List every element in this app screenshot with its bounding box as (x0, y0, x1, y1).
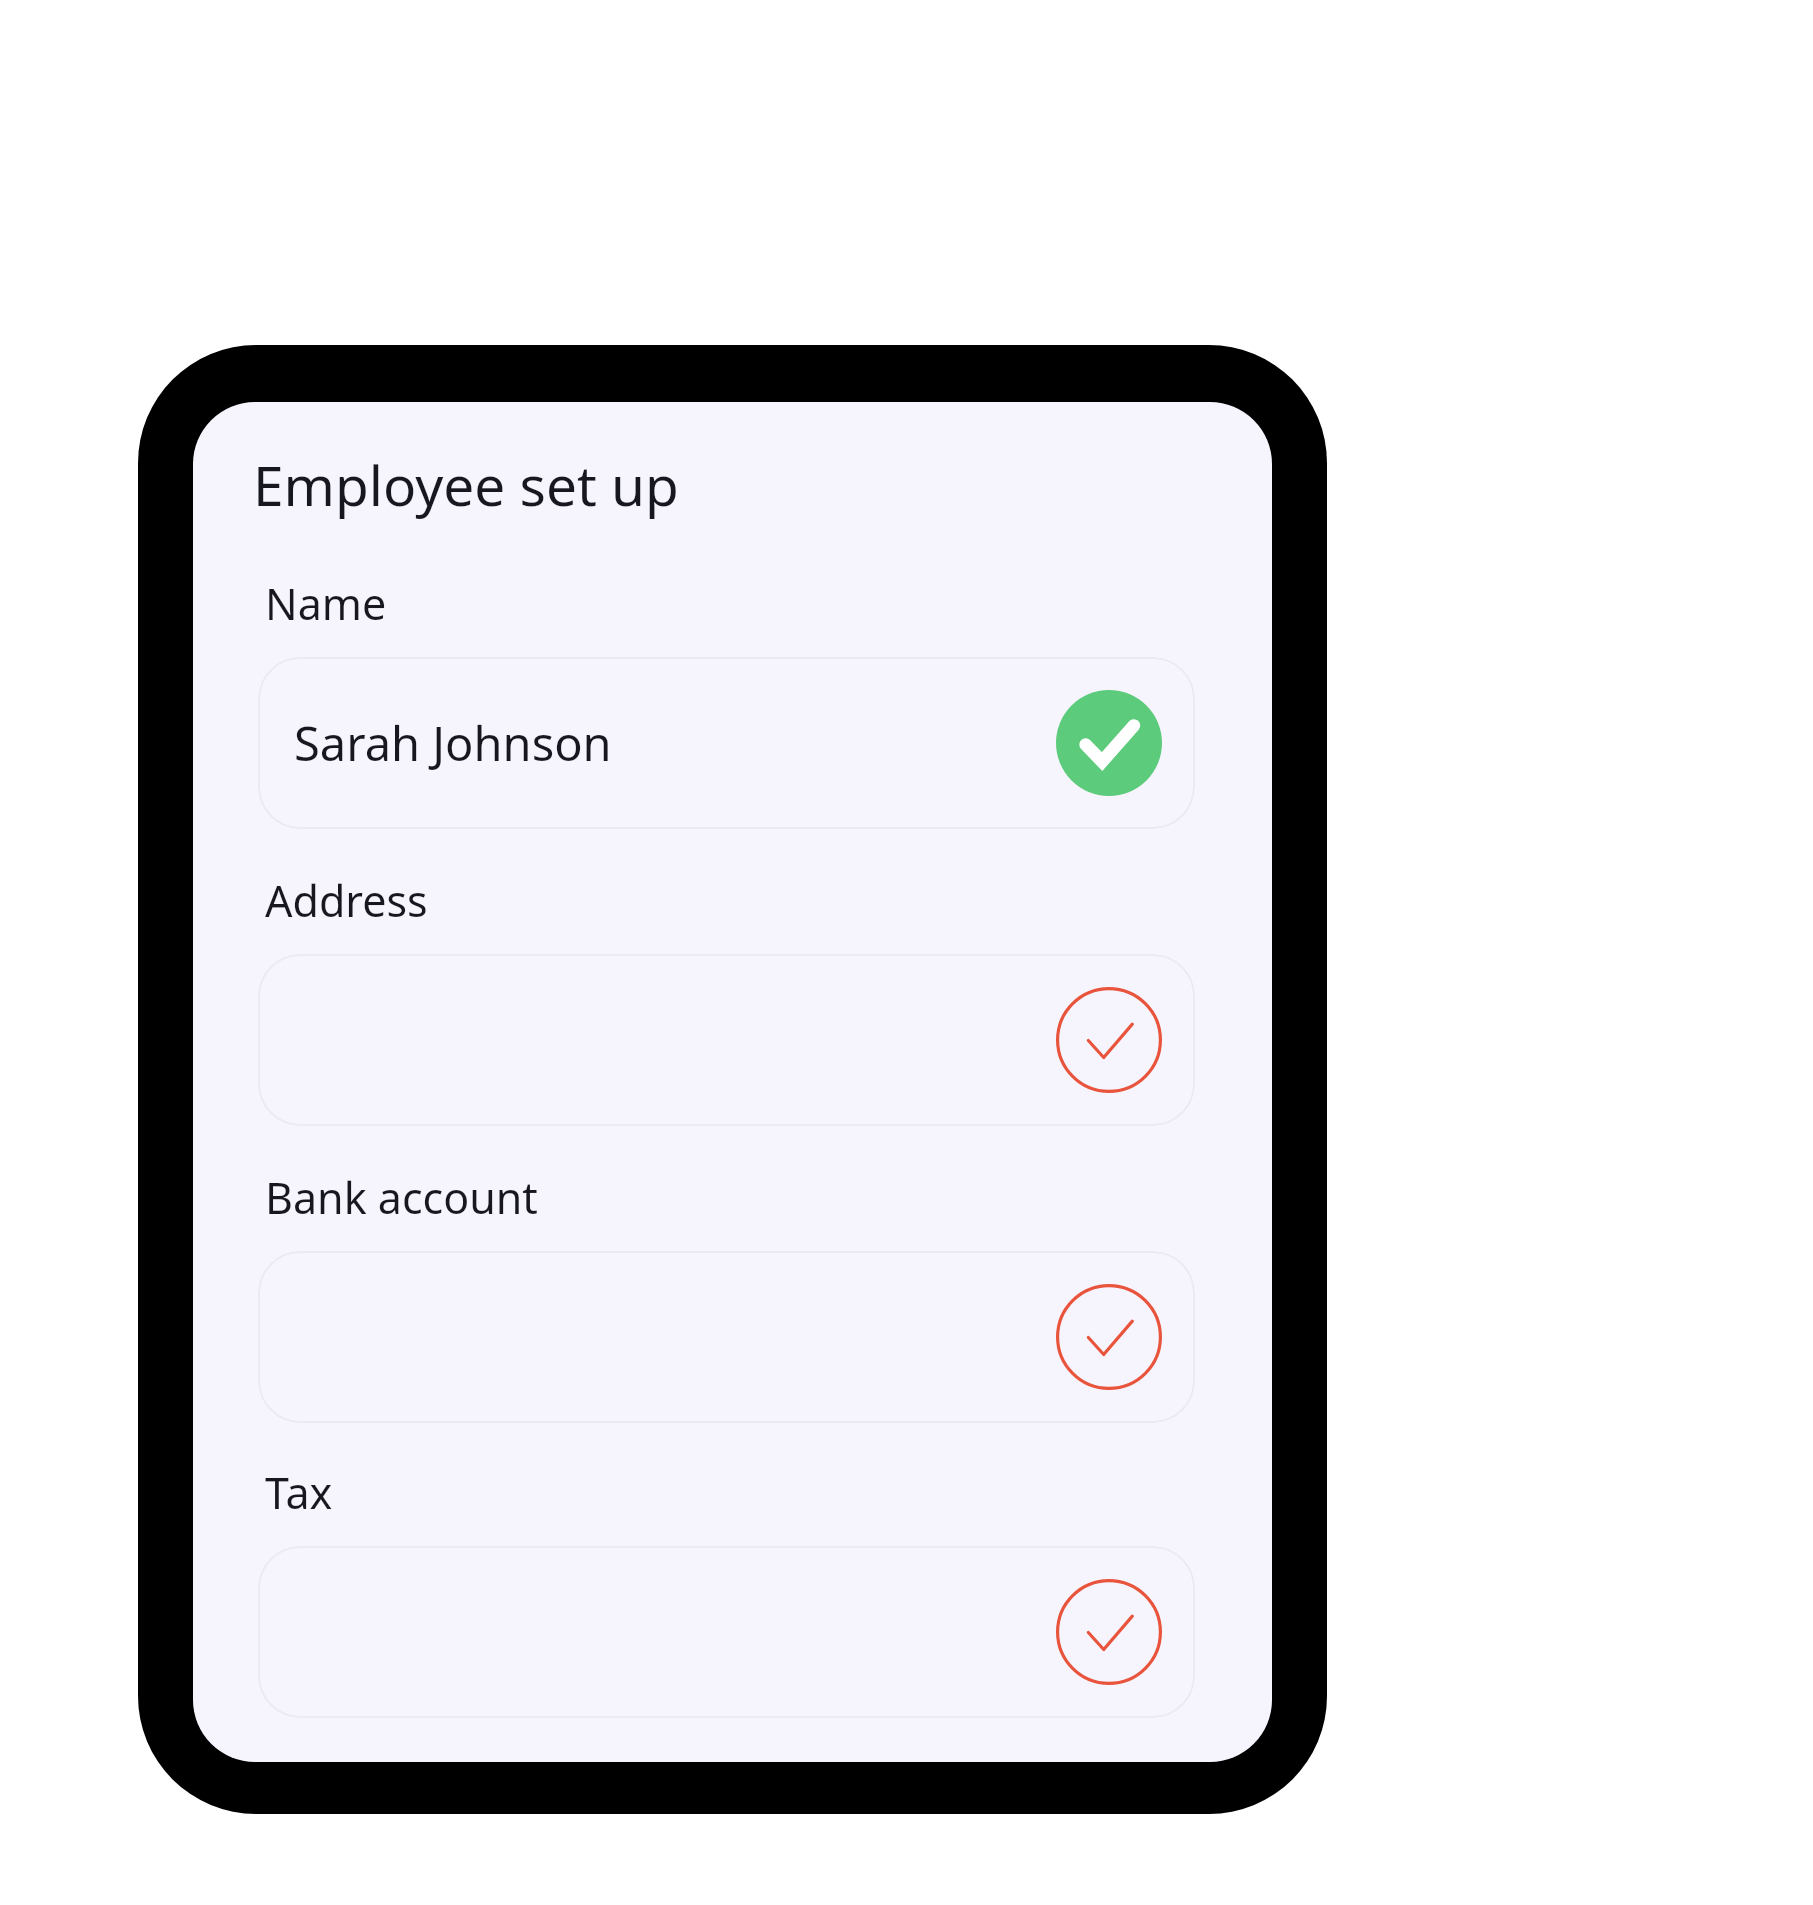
staticText: Tax (265, 1463, 333, 1522)
button[interactable]: Tax pending (258, 1546, 1195, 1718)
button[interactable]: Address pending (258, 954, 1195, 1126)
button[interactable]: Bank account pending (258, 1251, 1195, 1423)
staticText: Employee set up (253, 447, 679, 522)
button[interactable]: Bank account pending (1053, 1281, 1165, 1393)
button[interactable]: Sarah Johnson (258, 657, 1195, 829)
staticText: Address (265, 871, 428, 930)
button[interactable]: Address pending (1053, 984, 1165, 1096)
staticText: Name (265, 574, 387, 633)
staticText: Sarah Johnson (294, 711, 612, 775)
button[interactable]: Tax pending (1053, 1576, 1165, 1688)
button[interactable]: Name verified (1053, 687, 1165, 799)
staticText: Bank account (265, 1168, 538, 1227)
